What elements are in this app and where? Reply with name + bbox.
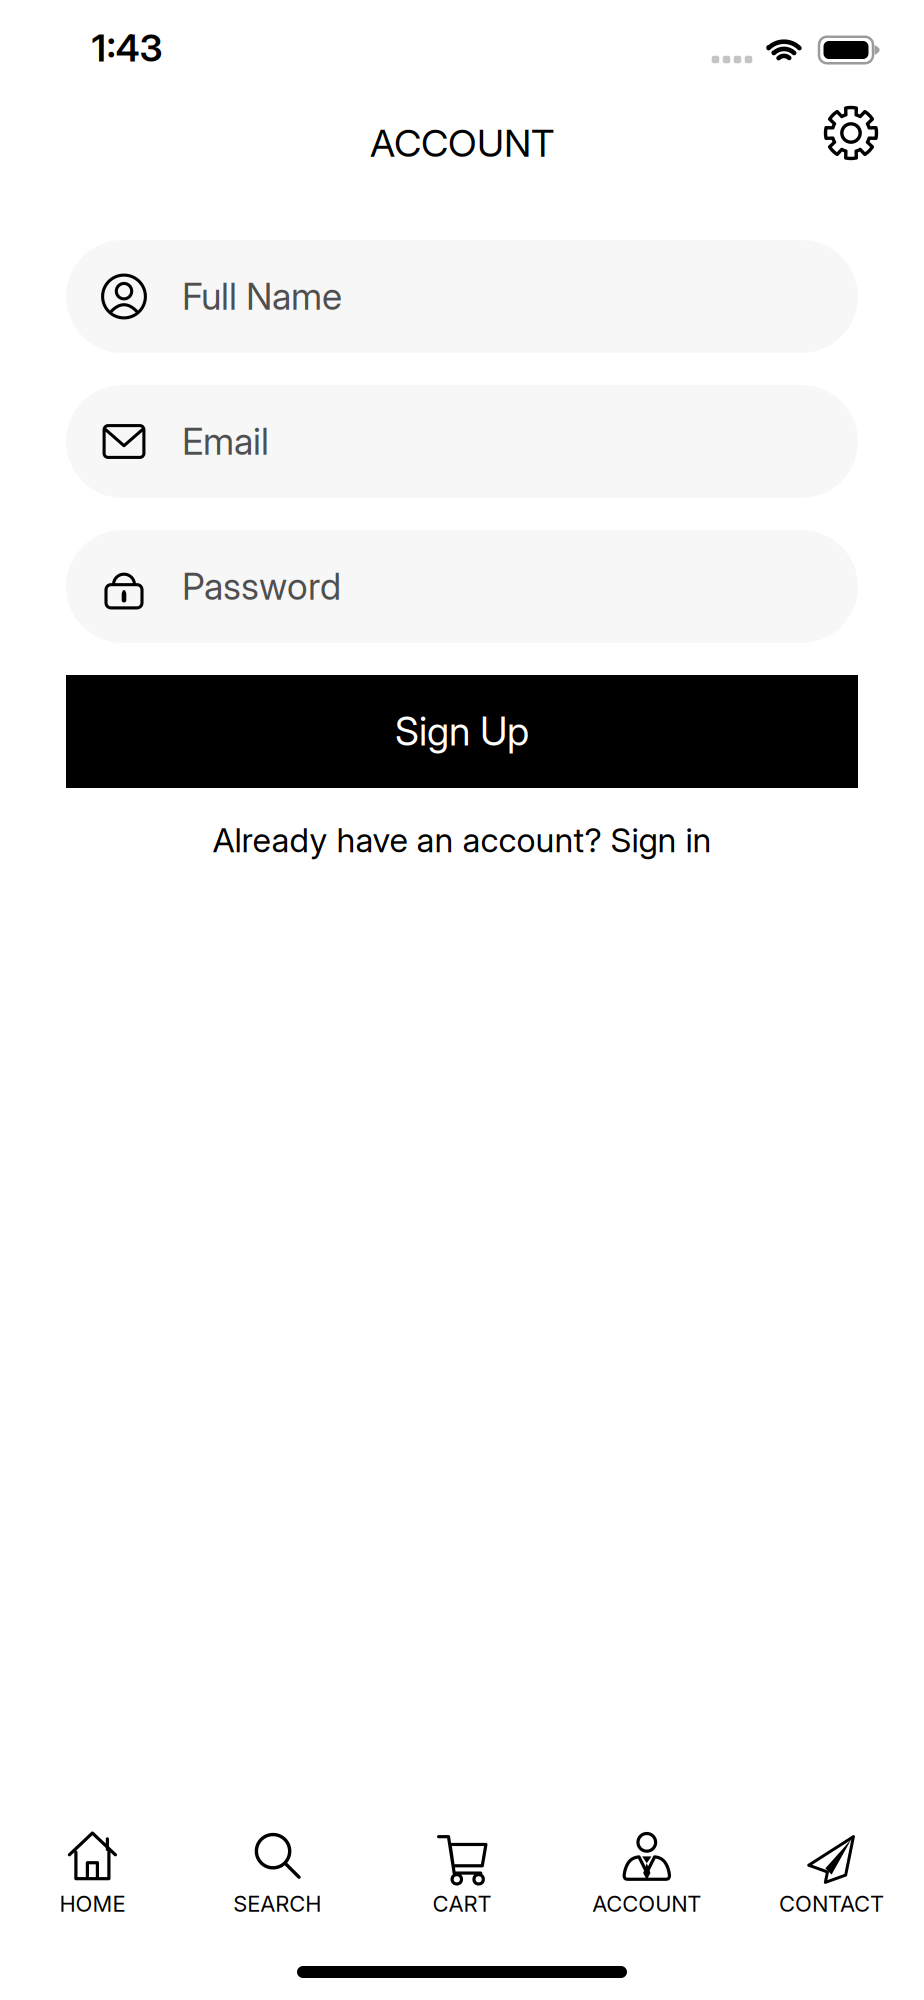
button[interactable]: Settings bbox=[824, 106, 878, 160]
button[interactable]: HOME bbox=[0, 1828, 185, 1917]
button[interactable]: Full Name bbox=[66, 240, 858, 353]
button[interactable]: Sign Up bbox=[66, 675, 858, 788]
button[interactable]: Email bbox=[66, 385, 858, 498]
button[interactable]: CONTACT bbox=[739, 1828, 924, 1917]
button[interactable]: SEARCH bbox=[185, 1828, 370, 1917]
staticText: ACCOUNT bbox=[370, 120, 554, 166]
button[interactable]: CART bbox=[370, 1828, 554, 1917]
staticText: SEARCH bbox=[233, 1890, 321, 1917]
staticText: ACCOUNT bbox=[592, 1890, 701, 1917]
staticText: HOME bbox=[59, 1890, 125, 1917]
button[interactable]: Already have an account? Sign in bbox=[212, 820, 711, 860]
button[interactable]: Password bbox=[66, 530, 858, 643]
staticText: Sign Up bbox=[395, 708, 529, 755]
staticText: Already have an account? Sign in bbox=[212, 820, 711, 860]
staticText: Password bbox=[182, 564, 341, 609]
button[interactable]: ACCOUNT bbox=[554, 1828, 739, 1917]
staticText: 1:43 bbox=[91, 25, 162, 71]
staticText: CONTACT bbox=[779, 1890, 884, 1917]
staticText: CART bbox=[432, 1890, 491, 1917]
staticText: Email bbox=[182, 419, 269, 464]
staticText: Full Name bbox=[182, 274, 342, 319]
